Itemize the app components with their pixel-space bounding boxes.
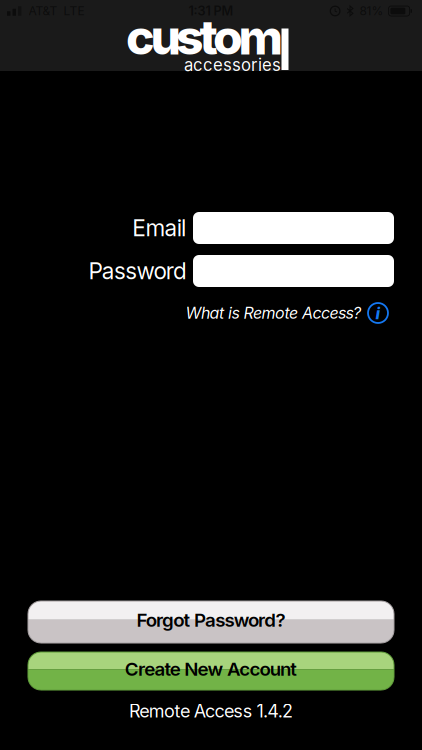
staticText: accessories xyxy=(184,55,281,75)
staticText: 1:31 PM xyxy=(188,3,233,19)
staticText: What is Remote Access? xyxy=(185,303,361,323)
staticText: Forgot Password? xyxy=(136,609,285,631)
button[interactable]: Forgot Password? xyxy=(28,601,394,643)
staticText: Password xyxy=(89,257,187,285)
button[interactable]: What is Remote Access information xyxy=(367,302,389,324)
textField[interactable] xyxy=(193,256,394,286)
textField[interactable] xyxy=(193,213,394,243)
staticText: Email xyxy=(132,214,186,242)
staticText: custom xyxy=(126,8,283,66)
staticText: Create New Account xyxy=(125,658,297,680)
staticText: i xyxy=(375,304,380,323)
staticText: Remote Access 1.4.2 xyxy=(129,700,293,722)
staticText: AT&T xyxy=(28,4,57,18)
staticText: LTE xyxy=(63,4,84,18)
staticText: 81% xyxy=(360,4,384,18)
button[interactable]: Create New Account xyxy=(28,652,394,690)
